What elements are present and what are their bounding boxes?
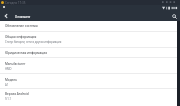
staticText: HMD <box>5 67 12 71</box>
button[interactable]: Модель <box>0 74 177 89</box>
staticText: Юридическая информация <box>5 51 47 55</box>
button[interactable]: Обновление системы <box>0 21 177 32</box>
staticText: Модель <box>5 78 17 82</box>
button[interactable]: Search <box>168 11 180 21</box>
button[interactable]: Manufacturer <box>0 58 177 74</box>
staticText: Общая информация <box>5 35 37 39</box>
button[interactable]: Юридическая информация <box>0 48 177 58</box>
staticText: Сегодня 17:35 <box>5 1 26 5</box>
button[interactable]: Общая информация <box>0 32 177 48</box>
staticText: Статус батареи, сети и другая информация <box>5 40 62 44</box>
staticText: О планшете <box>15 15 31 18</box>
staticText: A1 <box>5 83 9 87</box>
staticText: Версия Android <box>5 92 29 96</box>
staticText: 9.1.1 <box>5 97 12 101</box>
button[interactable]: Версия Android <box>0 89 177 106</box>
staticText: Manufacturer <box>5 62 26 66</box>
button[interactable]: Back <box>0 11 12 21</box>
staticText: Обновление системы <box>5 24 38 28</box>
